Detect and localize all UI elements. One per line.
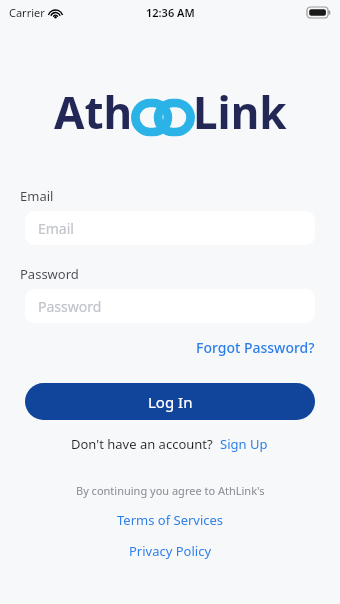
staticText: Email — [38, 219, 74, 238]
staticText: Privacy Policy — [129, 542, 212, 560]
staticText: 12:36 AM — [146, 5, 195, 20]
staticText: Forgot Password? — [196, 338, 315, 357]
staticText: Carrier — [9, 5, 45, 20]
staticText: Don't have an account? — [71, 435, 213, 453]
staticText: Ath — [54, 82, 133, 142]
other: Battery — [307, 7, 331, 18]
staticText: Sign Up — [220, 435, 268, 453]
staticText: Log In — [148, 392, 193, 412]
staticText: Link — [193, 82, 287, 142]
staticText: Email — [20, 187, 54, 205]
button[interactable]: Terms of Services — [113, 509, 228, 531]
button[interactable]: Email — [25, 211, 315, 245]
button[interactable]: Forgot Password? — [194, 336, 317, 359]
staticText: Password — [20, 265, 79, 283]
staticText: Terms of Services — [117, 511, 224, 529]
staticText: By continuing you agree to AthLink's — [76, 483, 265, 498]
button[interactable]: Sign Up — [218, 433, 270, 455]
staticText: Password — [38, 297, 102, 316]
button[interactable]: Log In — [25, 383, 315, 420]
button[interactable]: Privacy Policy — [125, 540, 216, 562]
button[interactable]: Password — [25, 289, 315, 323]
